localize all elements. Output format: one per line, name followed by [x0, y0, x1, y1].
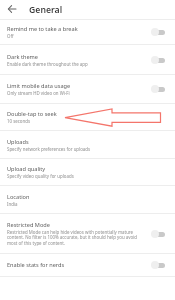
staticText: Limit mobile data usage [7, 82, 71, 90]
button[interactable]: Back [2, 0, 21, 17]
button[interactable]: Upload quality [0, 159, 175, 185]
button[interactable]: Dark theme [0, 45, 175, 74]
staticText: General [29, 4, 63, 16]
staticText: Restricted Mode [7, 221, 50, 229]
staticText: Restricted Mode can help hide videos wit… [7, 229, 144, 247]
button[interactable]: Double-tap to seek [0, 104, 175, 130]
button[interactable]: Toggle Dark theme [148, 52, 168, 68]
staticText: Specify network preferences for uploads [7, 146, 91, 152]
staticText: Off [7, 33, 14, 39]
staticText: Enable dark theme throughout the app [7, 61, 88, 67]
button[interactable]: Enable stats for nerds [0, 254, 175, 276]
button[interactable]: Toggle Remind me to take a break [148, 24, 168, 40]
button[interactable]: Limit mobile data usage [0, 75, 175, 103]
staticText: Only stream HD video on Wi-Fi [7, 90, 70, 96]
staticText: Remind me to take a break [7, 25, 78, 33]
button[interactable]: Remind me to take a break [0, 20, 175, 44]
staticText: Specify video quality for uploads [7, 173, 74, 179]
button[interactable]: Location [0, 186, 175, 213]
button[interactable]: Restricted Mode [0, 214, 175, 253]
staticText: Uploads [7, 138, 29, 146]
button[interactable]: Uploads [0, 131, 175, 158]
button[interactable]: Toggle Limit mobile data usage [148, 81, 168, 97]
staticText: 10 seconds [7, 118, 31, 124]
staticText: Dark theme [7, 53, 38, 61]
staticText: Upload quality [7, 165, 46, 173]
staticText: India [7, 201, 18, 207]
button[interactable]: Toggle Enable stats for nerds [148, 257, 168, 273]
staticText: Location [7, 193, 30, 201]
staticText: Double-tap to seek [7, 110, 57, 118]
staticText: Enable stats for nerds [7, 261, 65, 269]
button[interactable]: Toggle Restricted Mode [148, 226, 168, 242]
